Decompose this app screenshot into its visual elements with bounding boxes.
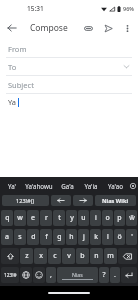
button[interactable]: Attach file xyxy=(78,18,98,38)
staticText: a xyxy=(5,232,9,242)
staticText: Ya' xyxy=(8,182,16,190)
staticText: Compose xyxy=(30,22,68,34)
button[interactable]: , xyxy=(46,267,56,283)
button[interactable]: Move cursor left xyxy=(51,195,71,206)
staticText: v xyxy=(67,251,71,261)
staticText: 15:31 xyxy=(27,4,44,13)
staticText: Ga'a xyxy=(61,182,74,190)
staticText: z xyxy=(25,251,29,261)
staticText: 123!# xyxy=(4,272,17,279)
button[interactable]: j xyxy=(78,229,89,245)
staticText: e xyxy=(31,213,35,223)
button[interactable]: Ga'a xyxy=(55,177,79,194)
button[interactable]: x xyxy=(34,248,47,264)
button[interactable]: o xyxy=(102,210,113,226)
staticText: Nias xyxy=(72,271,83,278)
button[interactable]: a xyxy=(1,229,13,245)
staticText: p xyxy=(117,213,122,223)
staticText: Ya'ahowu xyxy=(25,182,53,190)
staticText: u xyxy=(81,213,86,223)
staticText: n xyxy=(94,251,99,261)
staticText: w xyxy=(17,213,23,223)
button[interactable]: s xyxy=(14,229,26,245)
staticText: Subject xyxy=(8,80,34,90)
staticText: s xyxy=(18,232,22,242)
button[interactable]: Expand suggestions xyxy=(127,177,138,194)
staticText: Nias Wiki xyxy=(102,197,129,205)
button[interactable]: n xyxy=(90,248,103,264)
button[interactable]: From xyxy=(0,40,138,57)
button[interactable]: c xyxy=(48,248,61,264)
staticText: From xyxy=(8,44,27,54)
button[interactable]: Backspace xyxy=(118,248,137,264)
button[interactable]: l xyxy=(102,229,113,245)
staticText: j xyxy=(83,232,85,242)
button[interactable]: Ya'ao xyxy=(103,177,127,194)
button[interactable]: Change language xyxy=(20,267,32,283)
staticText: ? xyxy=(102,270,106,280)
staticText: c xyxy=(53,251,57,261)
button[interactable]: w̃ xyxy=(126,210,137,226)
button[interactable]: Ya' xyxy=(0,177,23,194)
staticText: i xyxy=(95,213,97,223)
button[interactable]: b xyxy=(76,248,89,264)
staticText: , xyxy=(50,270,52,280)
button[interactable]: ' xyxy=(126,229,137,245)
staticText: ö xyxy=(117,232,122,242)
staticText: x xyxy=(39,251,43,261)
staticText: To xyxy=(8,62,17,72)
button[interactable]: Emoji xyxy=(33,267,45,283)
staticText: f xyxy=(45,232,48,242)
button[interactable]: 123!# xyxy=(1,267,19,283)
button[interactable]: Enter xyxy=(121,267,137,283)
button[interactable]: m xyxy=(104,248,117,264)
staticText: Ya xyxy=(8,97,17,107)
button[interactable]: ? xyxy=(99,267,109,283)
button[interactable]: t xyxy=(53,210,65,226)
staticText: q xyxy=(5,213,10,223)
button[interactable]: u xyxy=(78,210,89,226)
button[interactable]: h xyxy=(66,229,77,245)
button[interactable]: i xyxy=(90,210,101,226)
button[interactable]: Move cursor right xyxy=(73,195,93,206)
button[interactable]: ö xyxy=(114,229,125,245)
button[interactable]: More options xyxy=(118,19,136,37)
button[interactable]: q xyxy=(1,210,13,226)
button[interactable]: Nias Wiki xyxy=(95,195,136,206)
button[interactable]: v xyxy=(62,248,75,264)
staticText: w̃ xyxy=(129,213,135,223)
button[interactable]: Ya xyxy=(0,94,138,110)
button[interactable]: f xyxy=(40,229,52,245)
staticText: y xyxy=(70,213,74,223)
button[interactable]: Back xyxy=(0,16,24,40)
button[interactable]: Ya'ahowu xyxy=(23,177,55,194)
button[interactable]: Shift xyxy=(1,248,19,264)
staticText: g xyxy=(57,232,62,242)
button[interactable]: Space xyxy=(57,267,98,283)
staticText: h xyxy=(69,232,74,242)
button[interactable]: Send xyxy=(98,18,118,38)
staticText: 96% xyxy=(123,5,134,12)
button[interactable]: 123!#() xyxy=(2,195,49,206)
button[interactable]: z xyxy=(20,248,33,264)
button[interactable]: w xyxy=(14,210,26,226)
staticText: Ya'ia xyxy=(84,182,98,190)
staticText: o xyxy=(105,213,110,223)
button[interactable]: g xyxy=(53,229,65,245)
staticText: t xyxy=(58,213,61,223)
button[interactable]: e xyxy=(27,210,39,226)
button[interactable]: d xyxy=(27,229,39,245)
button[interactable]: To xyxy=(0,58,138,75)
button[interactable]: r xyxy=(40,210,52,226)
button[interactable]: Subject xyxy=(0,76,138,93)
staticText: ' xyxy=(131,232,133,242)
button[interactable]: k xyxy=(90,229,101,245)
button[interactable]: y xyxy=(66,210,77,226)
button[interactable]: . xyxy=(110,267,120,283)
staticText: . xyxy=(114,270,116,280)
staticText: Ya'ao xyxy=(108,182,123,190)
staticText: 123!#() xyxy=(16,197,35,205)
staticText: r xyxy=(45,213,48,223)
button[interactable]: Ya'ia xyxy=(79,177,103,194)
button[interactable]: p xyxy=(114,210,125,226)
